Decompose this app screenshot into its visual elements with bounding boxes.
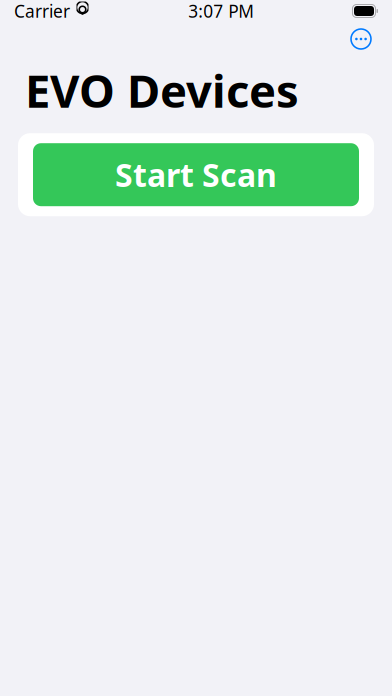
- staticText: Carrier: [14, 0, 70, 22]
- staticText: Start Scan: [115, 153, 277, 196]
- staticText: EVO Devices: [25, 60, 299, 120]
- button[interactable]: More options: [339, 22, 383, 56]
- staticText: 3:07 PM: [188, 0, 254, 22]
- button[interactable]: Start Scan: [18, 133, 374, 216]
